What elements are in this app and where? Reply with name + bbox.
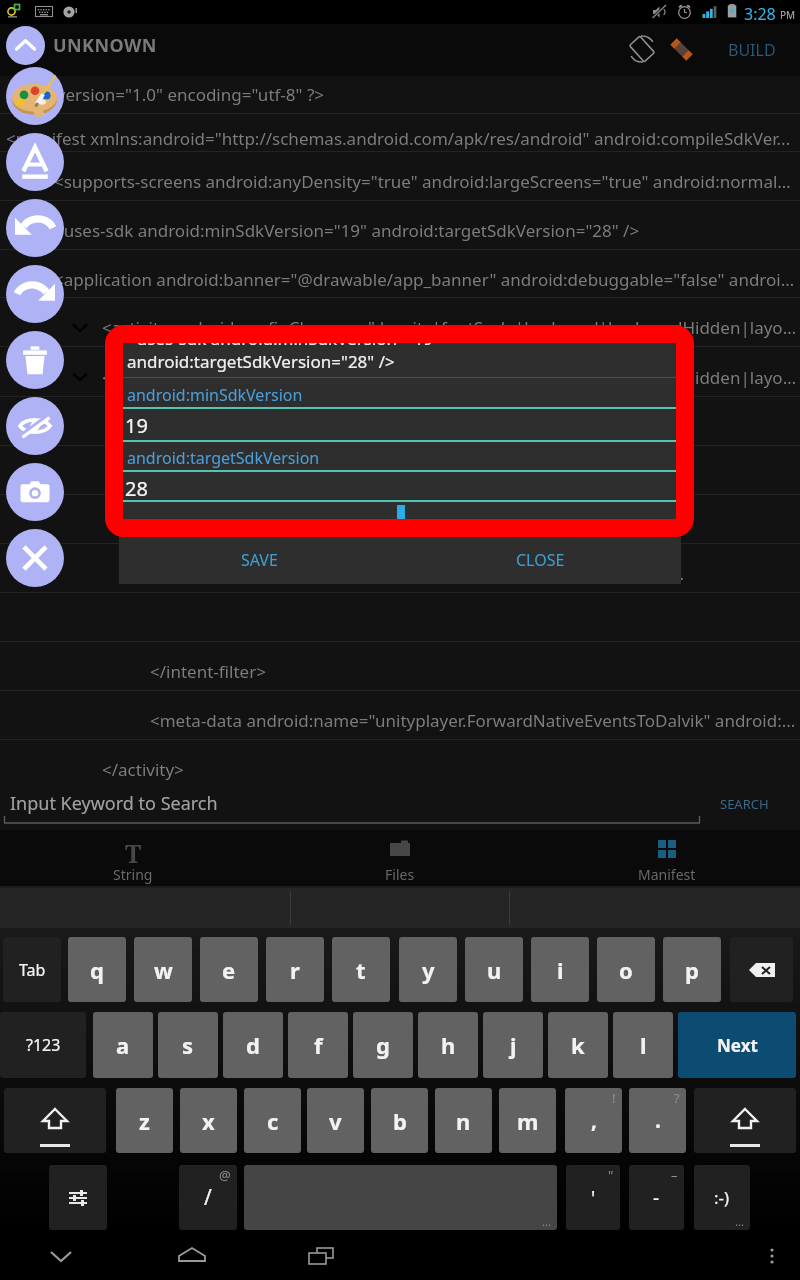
button[interactable]: Hide bbox=[6, 397, 64, 455]
button[interactable] bbox=[0, 495, 800, 544]
button[interactable]: Backspace bbox=[730, 937, 793, 1002]
button[interactable]: </intent-filter> bbox=[0, 642, 800, 691]
button[interactable]: Next bbox=[678, 1012, 796, 1078]
button[interactable]: j bbox=[483, 1012, 543, 1078]
button[interactable]: z bbox=[116, 1088, 173, 1153]
staticText: 3:28 bbox=[744, 3, 776, 25]
button[interactable]: o bbox=[597, 937, 655, 1002]
button[interactable]: Theme bbox=[6, 67, 64, 125]
button[interactable]: <manifest xmlns:android="http://schemas.… bbox=[0, 114, 800, 152]
staticText: f bbox=[314, 1030, 323, 1060]
button[interactable]: ?123 bbox=[0, 1012, 86, 1078]
staticText: Input Keyword to Search bbox=[10, 791, 218, 816]
staticText: z bbox=[139, 1106, 150, 1136]
button[interactable]: Collapse toolbar bbox=[6, 26, 45, 65]
button[interactable]: s bbox=[158, 1012, 218, 1078]
button[interactable]: x bbox=[180, 1088, 237, 1153]
button[interactable] bbox=[0, 446, 800, 495]
button[interactable]: <meta-data android:name="unityplayer.For… bbox=[0, 691, 800, 740]
button[interactable]: Home bbox=[163, 1231, 221, 1280]
button[interactable]: a bbox=[93, 1012, 153, 1078]
button[interactable]: <?xml version="1.0" encoding="utf-8" ?> bbox=[0, 65, 800, 114]
button[interactable]: i bbox=[531, 937, 589, 1002]
button[interactable]: . bbox=[629, 1088, 686, 1153]
staticText: <meta-data android:name="unityplayer.For… bbox=[150, 709, 796, 732]
button[interactable]: n bbox=[435, 1088, 492, 1153]
button[interactable]: , bbox=[565, 1088, 622, 1153]
staticText: <uses-sdk android:minSdkVersion="19" and… bbox=[54, 219, 640, 242]
button[interactable]: ' bbox=[566, 1165, 620, 1230]
button[interactable]: Screenshot bbox=[6, 463, 64, 521]
button[interactable]: e bbox=[200, 937, 258, 1002]
staticText: o bbox=[619, 955, 633, 985]
button[interactable]: Delete bbox=[6, 331, 64, 389]
button[interactable]: t bbox=[332, 937, 390, 1002]
button[interactable]: d bbox=[223, 1012, 283, 1078]
button[interactable]: v bbox=[307, 1088, 364, 1153]
button[interactable]: Back bbox=[32, 1231, 90, 1280]
button[interactable]: m bbox=[499, 1088, 556, 1153]
staticText: <activity android:configChanges="density… bbox=[102, 366, 799, 389]
button[interactable]: l bbox=[613, 1012, 673, 1078]
button[interactable]: <uses-sdk android:minSdkVersion="19" and… bbox=[0, 201, 800, 250]
button[interactable]: :-) bbox=[694, 1165, 750, 1230]
button[interactable]: Symbols bbox=[49, 1165, 107, 1230]
staticText: android:targetSdkVersion bbox=[127, 447, 320, 469]
button[interactable]: </activity> bbox=[0, 740, 800, 789]
button[interactable]: <activity android:configChanges="density… bbox=[0, 789, 800, 838]
button[interactable]: <activity android:configChanges="density… bbox=[0, 298, 800, 347]
button[interactable]: g bbox=[353, 1012, 413, 1078]
staticText: r bbox=[290, 955, 300, 985]
button[interactable]: h bbox=[418, 1012, 478, 1078]
button[interactable]: <supports-screens android:anyDensity="tr… bbox=[0, 152, 800, 201]
staticText: x bbox=[202, 1106, 215, 1136]
staticText: j bbox=[510, 1030, 517, 1060]
button[interactable]: - bbox=[629, 1165, 684, 1230]
button[interactable]: Tab bbox=[3, 937, 61, 1002]
button[interactable]: u bbox=[465, 937, 523, 1002]
button[interactable]: SEARCH bbox=[700, 787, 788, 821]
staticText: <manifest xmlns:android="http://schemas.… bbox=[6, 127, 791, 150]
button[interactable]: Manifest bbox=[533, 830, 800, 886]
button[interactable]: p bbox=[663, 937, 721, 1002]
button[interactable]: Shift bbox=[694, 1088, 796, 1153]
button[interactable]: q bbox=[68, 937, 126, 1002]
button[interactable]: <action android:name="android.intent.cat… bbox=[0, 544, 800, 593]
staticText: t bbox=[356, 955, 366, 985]
staticText: g bbox=[376, 1030, 390, 1060]
button[interactable]: CLOSE bbox=[400, 535, 681, 584]
staticText: e bbox=[222, 955, 236, 985]
button[interactable]: T bbox=[0, 830, 266, 886]
staticText: SAVE bbox=[241, 549, 278, 571]
button[interactable]: Close bbox=[6, 529, 64, 587]
button[interactable]: f bbox=[288, 1012, 348, 1078]
button[interactable]: Redo bbox=[6, 265, 64, 323]
button[interactable]: b bbox=[371, 1088, 428, 1153]
button[interactable]: Recent apps bbox=[292, 1231, 350, 1280]
button[interactable]: w bbox=[134, 937, 192, 1002]
button[interactable]: <application android:banner="@drawable/a… bbox=[0, 250, 800, 298]
staticText: " bbox=[608, 1166, 614, 1184]
button[interactable]: r bbox=[266, 937, 324, 1002]
staticText: String bbox=[113, 865, 153, 884]
button[interactable]: Highlight bbox=[658, 26, 704, 72]
staticText: , bbox=[591, 1106, 597, 1135]
button[interactable]: Shift bbox=[4, 1088, 106, 1153]
button[interactable]: Undo bbox=[6, 199, 64, 257]
button[interactable]: <activity android:configChanges="density… bbox=[0, 347, 800, 397]
button[interactable]: / bbox=[179, 1165, 237, 1230]
button[interactable]: Font bbox=[6, 133, 64, 191]
staticText: <?xml version="1.0" encoding="utf-8" ?> bbox=[6, 83, 325, 106]
button[interactable]: Rotate screen bbox=[619, 26, 665, 72]
button[interactable] bbox=[0, 397, 800, 446]
button[interactable]: More options bbox=[750, 1234, 794, 1278]
button[interactable]: y bbox=[399, 937, 457, 1002]
button[interactable]: k bbox=[548, 1012, 608, 1078]
staticText: android:targetSdkVersion="28" /> bbox=[127, 350, 395, 373]
button[interactable]: Files bbox=[266, 830, 533, 886]
button[interactable]: SAVE bbox=[119, 535, 400, 584]
button[interactable]: BUILD bbox=[716, 30, 788, 70]
button[interactable]: c bbox=[244, 1088, 301, 1153]
